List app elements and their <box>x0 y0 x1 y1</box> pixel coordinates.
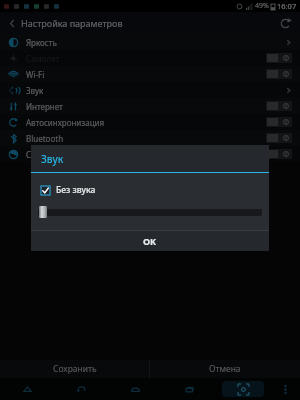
button[interactable]: Bluetooth toggle <box>266 133 292 143</box>
staticText: Настройка параметров <box>21 17 123 29</box>
button[interactable]: Back <box>6 17 18 29</box>
button[interactable]: Яркость <box>0 34 300 50</box>
button[interactable]: Up <box>0 378 54 400</box>
button[interactable]: Wi-Fi toggle <box>266 69 292 79</box>
button[interactable]: Самолет <box>0 50 300 66</box>
button[interactable]: Звук <box>0 82 300 98</box>
staticText: Сохранить <box>53 363 97 375</box>
button[interactable]: Сон <box>0 146 300 162</box>
staticText: Wi-Fi <box>26 69 45 80</box>
button[interactable]: Wi-Fi <box>0 66 300 82</box>
button[interactable]: Интернет toggle <box>266 101 292 111</box>
button[interactable]: Recents <box>162 378 216 400</box>
button[interactable]: Автосинхронизация toggle <box>266 117 292 127</box>
button[interactable]: Интернет <box>0 98 300 114</box>
staticText: Без звука <box>56 184 96 196</box>
button[interactable]: Screenshot <box>222 381 264 397</box>
staticText: 49% <box>255 1 269 11</box>
staticText: Звук <box>26 85 44 96</box>
staticText: Сон <box>26 149 41 160</box>
button[interactable]: Автосинхронизация <box>0 114 300 130</box>
button[interactable]: Сон toggle <box>266 149 292 159</box>
staticText: OK <box>143 235 157 247</box>
button[interactable]: Bluetooth <box>0 130 300 146</box>
staticText: Отмена <box>209 363 241 375</box>
button[interactable]: Volume slider <box>38 206 262 218</box>
button[interactable]: OK <box>31 231 269 251</box>
button[interactable]: Refresh <box>276 14 294 32</box>
button[interactable]: Back <box>54 378 108 400</box>
button[interactable]: Сохранить <box>0 360 149 378</box>
staticText: Самолет <box>26 53 60 64</box>
button[interactable]: More options <box>270 378 300 400</box>
button[interactable]: Отмена <box>150 360 300 378</box>
staticText: 16:07 <box>277 1 297 11</box>
staticText: Яркость <box>26 37 57 48</box>
staticText: Bluetooth <box>26 133 64 144</box>
button[interactable]: Самолет toggle <box>266 53 292 63</box>
button[interactable]: Home <box>108 378 162 400</box>
staticText: Автосинхронизация <box>26 117 105 128</box>
staticText: Звук <box>41 152 64 166</box>
staticText: Интернет <box>26 101 63 112</box>
button[interactable]: Без звука <box>41 184 269 196</box>
